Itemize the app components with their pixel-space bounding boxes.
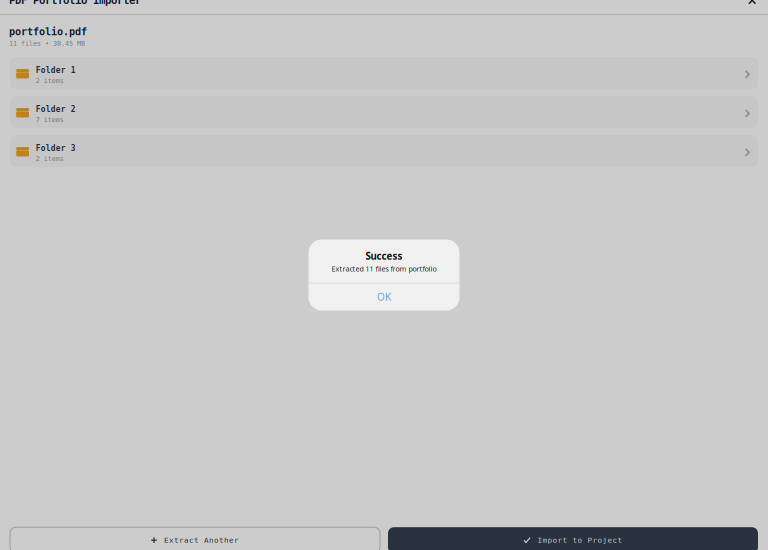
staticText: Folder 3 — [36, 144, 76, 153]
staticText: PDF Portfolio Importer — [9, 0, 141, 7]
staticText: Import to Project — [537, 536, 622, 545]
staticText: Success — [365, 249, 402, 263]
button[interactable]: OK — [308, 283, 459, 310]
button[interactable]: Extract Another — [10, 527, 380, 550]
button[interactable]: Close — [743, 0, 759, 9]
staticText: 7 items — [36, 116, 64, 124]
staticText: 11 files • 30.45 MB — [9, 40, 85, 47]
staticText: Folder 1 — [36, 66, 76, 75]
button[interactable]: Folder 1 — [10, 57, 758, 89]
button[interactable]: Folder 3 — [10, 135, 758, 167]
staticText: portfolio.pdf — [9, 26, 87, 38]
button[interactable]: Import to Project — [388, 527, 758, 550]
staticText: OK — [377, 290, 391, 304]
staticText: Folder 2 — [36, 105, 76, 114]
button[interactable]: Folder 2 — [10, 96, 758, 128]
staticText: 2 items — [36, 77, 64, 85]
staticText: Extract Another — [164, 536, 239, 545]
staticText: 2 items — [36, 155, 64, 163]
staticText: Extracted 11 files from portfolio — [331, 264, 436, 274]
